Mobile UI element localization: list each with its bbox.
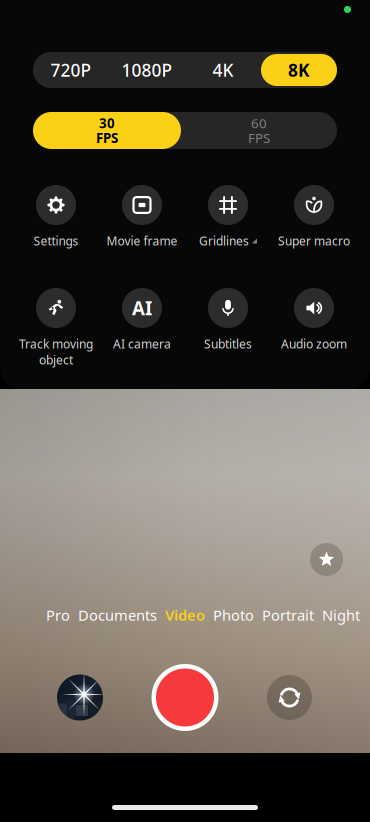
staticText: 30 [99, 114, 115, 132]
button[interactable]: Documents [78, 606, 157, 624]
button[interactable]: 60 [181, 112, 337, 149]
button[interactable]: Switch camera [267, 675, 312, 720]
button[interactable]: Audio zoom [271, 288, 357, 362]
button[interactable]: Movie frame [99, 185, 185, 259]
button[interactable]: Super macro [271, 185, 357, 259]
button[interactable]: 30 [33, 112, 181, 149]
staticText: 60 [251, 114, 267, 132]
button[interactable]: Portrait [262, 606, 314, 624]
button[interactable]: Subtitles [185, 288, 271, 362]
staticText: Subtitles [204, 336, 252, 352]
staticText: AI camera [113, 336, 171, 352]
staticText: 4K [212, 58, 233, 81]
button[interactable]: Pro [46, 606, 70, 624]
button[interactable]: 4K [185, 52, 261, 88]
staticText: Night [322, 605, 360, 625]
button[interactable]: 720P [33, 52, 109, 88]
staticText: AI [132, 296, 152, 320]
button[interactable]: 1080P [109, 52, 185, 88]
staticText: FPS [96, 129, 118, 147]
staticText: 720P [50, 58, 91, 81]
staticText: object [39, 352, 73, 368]
staticText: Pro [46, 605, 70, 625]
button[interactable]: Last photo [57, 674, 103, 720]
button[interactable]: Filters [310, 543, 343, 576]
staticText: Super macro [278, 233, 350, 249]
staticText: FPS [248, 129, 270, 147]
button[interactable]: Night [322, 606, 360, 624]
staticText: Movie frame [106, 233, 177, 249]
staticText: Audio zoom [281, 336, 347, 352]
staticText: Photo [213, 605, 254, 625]
staticText: Gridlines [199, 233, 249, 249]
staticText: Track moving [19, 336, 93, 352]
button[interactable]: Gridlines [185, 185, 271, 259]
button[interactable]: Track moving [13, 288, 99, 362]
staticText: Settings [33, 233, 78, 249]
button[interactable]: Photo [213, 606, 254, 624]
staticText: 8K [288, 58, 310, 81]
staticText: Documents [78, 605, 157, 625]
staticText: 1080P [121, 58, 172, 81]
button[interactable]: Settings [13, 185, 99, 259]
staticText: Video [165, 605, 205, 625]
button[interactable]: AI [99, 288, 185, 362]
button[interactable]: 8K [261, 52, 337, 88]
staticText: Portrait [262, 605, 314, 625]
button[interactable]: Video [165, 606, 205, 624]
button[interactable]: Record [151, 664, 218, 731]
